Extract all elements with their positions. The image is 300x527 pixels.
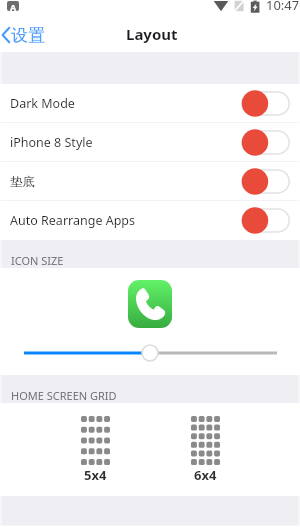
staticText: 6x4 — [194, 466, 217, 484]
staticText: Layout — [126, 24, 178, 44]
button[interactable]: Auto Rearrange Apps — [0, 201, 300, 240]
button[interactable]: Toggle Dark Mode — [241, 90, 290, 117]
button[interactable]: Dark Mode — [0, 84, 300, 123]
staticText: ICON SIZE — [11, 253, 64, 268]
staticText: iPhone 8 Style — [10, 134, 93, 151]
button[interactable]: 设置 — [0, 23, 51, 50]
button[interactable]: iPhone 8 Style — [0, 123, 300, 162]
button[interactable]: 5x4 — [72, 416, 118, 484]
button[interactable]: 6x4 — [182, 416, 228, 484]
staticText: Dark Mode — [10, 95, 75, 112]
staticText: 10:47 — [266, 0, 300, 14]
staticText: 设置 — [11, 25, 45, 46]
button[interactable]: 垫底 — [0, 162, 300, 201]
staticText: 垫底 — [10, 174, 35, 190]
button[interactable]: Icon size slider — [0, 343, 300, 363]
button[interactable]: Toggle iPhone 8 Style — [241, 129, 290, 156]
staticText: 5x4 — [84, 466, 107, 484]
staticText: A — [10, 1, 17, 11]
button[interactable]: Toggle 垫底 — [241, 168, 290, 195]
button[interactable]: Toggle Auto Rearrange Apps — [241, 207, 290, 234]
staticText: Auto Rearrange Apps — [10, 212, 136, 229]
button[interactable]: App icon size preview — [128, 280, 172, 328]
staticText: HOME SCREEN GRID — [11, 388, 117, 403]
